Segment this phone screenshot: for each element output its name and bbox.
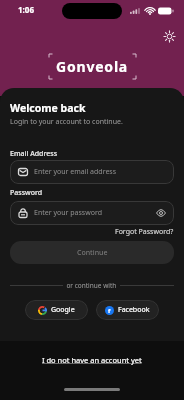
staticText: f [108, 307, 111, 315]
staticText: Email Address [10, 149, 58, 159]
staticText: Enter your email address [34, 167, 117, 177]
button[interactable]: I do not have an account yet [42, 355, 142, 365]
button[interactable]: Continue [10, 241, 174, 264]
button[interactable]: Enter your email address [10, 160, 174, 184]
button[interactable] [163, 30, 176, 43]
staticText: Login to your account to continue. [10, 117, 123, 127]
button[interactable]: Forgot Password? [115, 227, 174, 237]
staticText: Welcome back [10, 101, 86, 115]
staticText: Password [10, 188, 43, 198]
staticText: or continue with [63, 281, 120, 290]
button[interactable]: Enter your password [10, 201, 174, 225]
staticText: Enter your password [34, 208, 102, 218]
button[interactable]: Google [25, 300, 88, 320]
staticText: Facebook [118, 305, 150, 315]
staticText: 1:06 [18, 4, 34, 15]
staticText: Gonveola [56, 57, 129, 76]
button[interactable]: f [96, 300, 159, 320]
staticText: Google [51, 305, 75, 315]
staticText: Continue [77, 248, 108, 258]
